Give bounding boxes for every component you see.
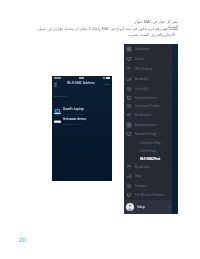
button[interactable]: Parental Controls <box>124 93 172 102</box>
staticText: Wi-Fi Settings <box>135 67 153 71</box>
staticText: 74:E5:0B:2A:19:C4 <box>63 122 84 125</box>
other: Connection Profiles <box>127 104 131 108</box>
staticText: Port Settings <box>140 149 157 153</box>
staticText: ولذلك لا يمكن أن يتشابه جهازان في عنوان … <box>18 26 178 31</box>
staticText: Wi-Fi MAC/Prot <box>140 157 161 161</box>
staticText: Dashboard <box>135 47 149 51</box>
staticText: Help <box>135 174 141 178</box>
button[interactable]: Unknown device <box>52 116 112 126</box>
other: Bandwidth <box>127 77 131 81</box>
other: Help <box>127 174 131 178</box>
other: My Account <box>127 165 131 169</box>
staticText: Advanced Search <box>135 123 157 127</box>
button[interactable]: Notifications <box>124 110 172 119</box>
button[interactable]: Setup <box>124 200 172 214</box>
other: Port Wireless Firmware <box>127 193 131 197</box>
staticText: Unknown device <box>63 117 87 121</box>
other: Devices <box>127 57 131 61</box>
staticText: 00:1B:44:11:3A:B7 <box>63 112 84 115</box>
other: Dashboard <box>127 47 131 51</box>
other: Wi-Fi Settings <box>127 67 131 71</box>
staticText: عنوان MAC يميز كل جهاز في الشبكة <box>126 19 178 29</box>
staticText: Wi-Fi MAC Address <box>67 81 95 85</box>
button[interactable]: Guest Wi-Fi <box>124 84 172 93</box>
button[interactable]: Bandwidth <box>124 74 172 83</box>
button[interactable]: Firmware <box>124 181 172 190</box>
staticText: الأرقام والحروف الست عشرية. <box>128 32 176 37</box>
staticText: Parental Controls <box>135 96 157 100</box>
button[interactable]: Devices <box>124 54 172 63</box>
staticText: 20 <box>19 236 26 244</box>
staticText: Connection Profiles <box>135 104 160 108</box>
staticText: My Account <box>135 165 150 169</box>
staticText: Firmware <box>135 184 147 188</box>
button[interactable]: Network Settings <box>124 129 172 138</box>
button[interactable]: Port Settings <box>124 146 172 155</box>
staticText: David's Laptop <box>63 107 84 111</box>
button[interactable]: Connection Map <box>124 138 172 147</box>
staticText: Network Settings <box>135 132 157 136</box>
other: Network Settings <box>127 132 131 136</box>
button[interactable]: Wi-Fi Settings <box>124 64 172 73</box>
other: Parental Controls <box>127 96 131 100</box>
button[interactable]: My Account <box>124 162 172 171</box>
staticText: Notifications <box>135 113 151 117</box>
staticText: Bandwidth <box>135 77 149 81</box>
staticText: MY DEVICES <box>54 95 68 98</box>
staticText: Port Wireless Firmware <box>135 193 165 197</box>
staticText: Devices <box>135 57 145 61</box>
staticText: Edit <box>105 82 110 85</box>
other: Guest Wi-Fi <box>127 87 131 91</box>
button[interactable]: Menu <box>54 82 57 85</box>
button[interactable]: Connection Profiles <box>124 101 172 110</box>
staticText: Connection Map <box>140 141 161 145</box>
button[interactable]: Dashboard <box>124 44 172 53</box>
staticText: Setup <box>137 205 146 209</box>
other: Notifications <box>127 113 131 117</box>
staticText: Guest Wi-Fi <box>135 87 150 91</box>
button[interactable]: David's Laptop <box>52 106 112 116</box>
button[interactable]: Port Wireless Firmware <box>124 190 172 199</box>
button[interactable]: Help <box>124 171 172 180</box>
button[interactable]: Advanced Search <box>124 120 172 129</box>
button[interactable]: Wi-Fi MAC/Prot <box>124 154 172 163</box>
other: Advanced Search <box>127 123 131 127</box>
other: Firmware <box>127 184 131 188</box>
